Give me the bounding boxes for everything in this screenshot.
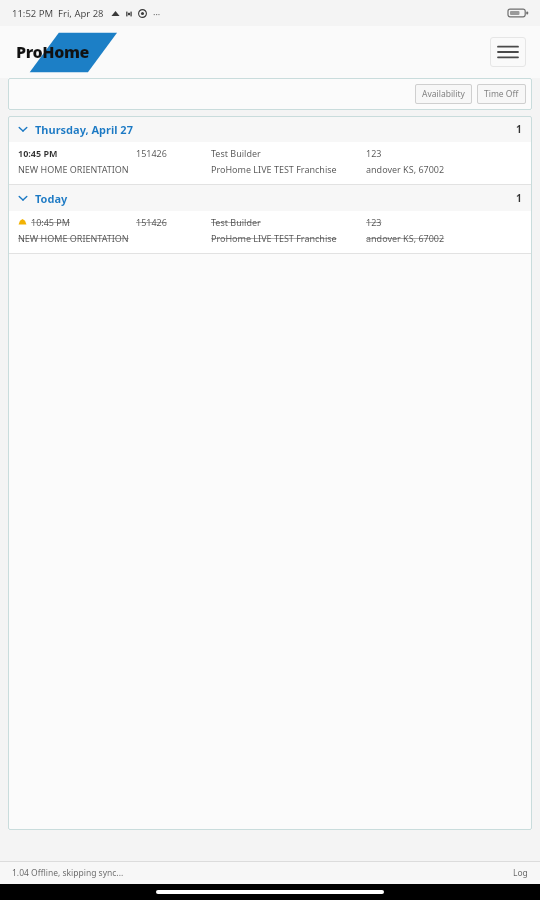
staticText: 151426 [136,147,167,159]
staticText: Time Off [484,88,519,100]
staticText: 1 [516,122,522,136]
staticText: andover KS, 67002 [366,232,445,244]
staticText: andover KS, 67002 [366,163,445,175]
staticText: Availability [422,88,465,100]
button[interactable]: ProHome [14,30,126,74]
staticText: 11:52 PM Fri, Apr 28 [12,7,104,20]
staticText: Test Builder [211,147,261,159]
staticText: NEW HOME ORIENTATION [18,232,129,244]
staticText: Thursday, April 27 [35,122,133,137]
staticText: ··· [153,8,161,20]
staticText: ProHome LIVE TEST Franchise [211,163,337,175]
staticText: Test Builder [211,216,261,228]
button[interactable]: Availability [415,84,472,104]
staticText: 123 [366,216,382,228]
staticText: Today [35,191,68,206]
staticText: ProHome [16,41,90,63]
button[interactable]: Time Off [477,84,526,104]
button[interactable]: Today [8,185,532,211]
staticText: 10:45 PM [31,216,70,228]
staticText: 1 [516,191,522,205]
staticText: Log [513,867,528,879]
staticText: 1.04 Offline, skipping sync... [12,867,124,879]
staticText: ProHome LIVE TEST Franchise [211,232,337,244]
staticText: 151426 [136,216,167,228]
staticText: 123 [366,147,382,159]
button[interactable]: Thursday, April 27 [8,116,532,142]
button[interactable]: 10:45 PM [8,211,532,253]
button[interactable]: 10:45 PM [8,142,532,184]
button[interactable]: Log [513,867,528,879]
button[interactable]: Menu [490,37,526,67]
staticText: 10:45 PM [18,147,58,159]
staticText: NEW HOME ORIENTATION [18,163,129,175]
